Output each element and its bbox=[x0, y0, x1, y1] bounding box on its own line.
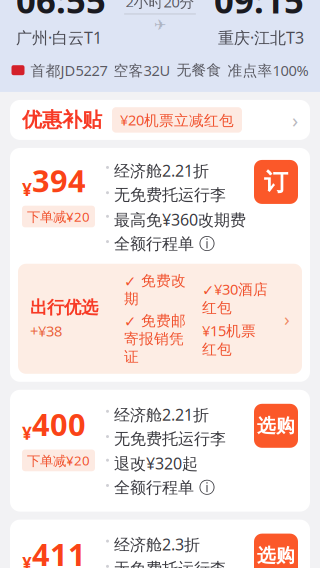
button[interactable]: 优惠补贴 bbox=[10, 100, 310, 140]
staticText: 400 bbox=[32, 404, 86, 444]
staticText: 无餐食 bbox=[176, 61, 221, 79]
staticText: ✈ bbox=[154, 16, 166, 33]
staticText: 广州·白云T1 bbox=[16, 27, 102, 48]
button[interactable]: 出行优选 bbox=[18, 264, 302, 374]
staticText: 经济舱2.3折 bbox=[114, 534, 200, 555]
staticText: ¥ bbox=[22, 178, 32, 201]
staticText: › bbox=[284, 306, 290, 331]
staticText: 下单减¥20 bbox=[27, 208, 90, 225]
staticText: 经济舱2.21折 bbox=[114, 404, 209, 425]
staticText: 无免费托运行李 bbox=[114, 185, 226, 205]
staticText: ✓ 免费改期 bbox=[124, 272, 186, 308]
staticText: ¥ bbox=[22, 421, 32, 444]
button[interactable]: 选购 bbox=[254, 404, 298, 448]
staticText: 2小时20分 bbox=[125, 0, 194, 11]
button[interactable]: 选购 bbox=[254, 534, 298, 568]
staticText: 重庆·江北T3 bbox=[218, 27, 304, 48]
button[interactable]: 订 bbox=[254, 160, 298, 204]
staticText: 准点率100% bbox=[227, 60, 308, 80]
staticText: 全额行程单 ⓘ bbox=[114, 478, 215, 498]
staticText: 退改¥320起 bbox=[114, 453, 198, 474]
staticText: 优惠补贴 bbox=[22, 108, 102, 132]
staticText: 选购 bbox=[257, 544, 295, 567]
staticText: 首都JD5227 bbox=[30, 60, 107, 80]
staticText: 无免费托运行李 bbox=[114, 559, 226, 568]
staticText: 下单减¥20 bbox=[27, 451, 90, 469]
staticText: 无免费托运行李 bbox=[114, 429, 226, 449]
staticText: ¥20机票立减红包 bbox=[120, 110, 234, 130]
staticText: 06:55 bbox=[16, 0, 106, 23]
staticText: 411 bbox=[32, 534, 86, 568]
staticText: 最高免¥360改期费 bbox=[114, 209, 246, 230]
staticText: ¥15机票红包 bbox=[202, 321, 256, 358]
staticText: 出行优选 bbox=[30, 297, 98, 318]
staticText: 空客32U bbox=[113, 60, 170, 80]
staticText: 经济舱2.21折 bbox=[114, 160, 209, 181]
staticText: 394 bbox=[32, 160, 86, 201]
staticText: ✓ 免费邮寄报销凭证 bbox=[124, 312, 186, 366]
staticText: +¥38 bbox=[30, 321, 62, 341]
staticText: 订 bbox=[264, 167, 288, 197]
staticText: ✓¥30酒店红包 bbox=[202, 279, 268, 317]
staticText: ¥ bbox=[22, 551, 32, 568]
staticText: 09:15 bbox=[214, 0, 304, 23]
staticText: › bbox=[292, 107, 298, 133]
staticText: 选购 bbox=[257, 414, 295, 437]
staticText: 全额行程单 ⓘ bbox=[114, 234, 215, 254]
